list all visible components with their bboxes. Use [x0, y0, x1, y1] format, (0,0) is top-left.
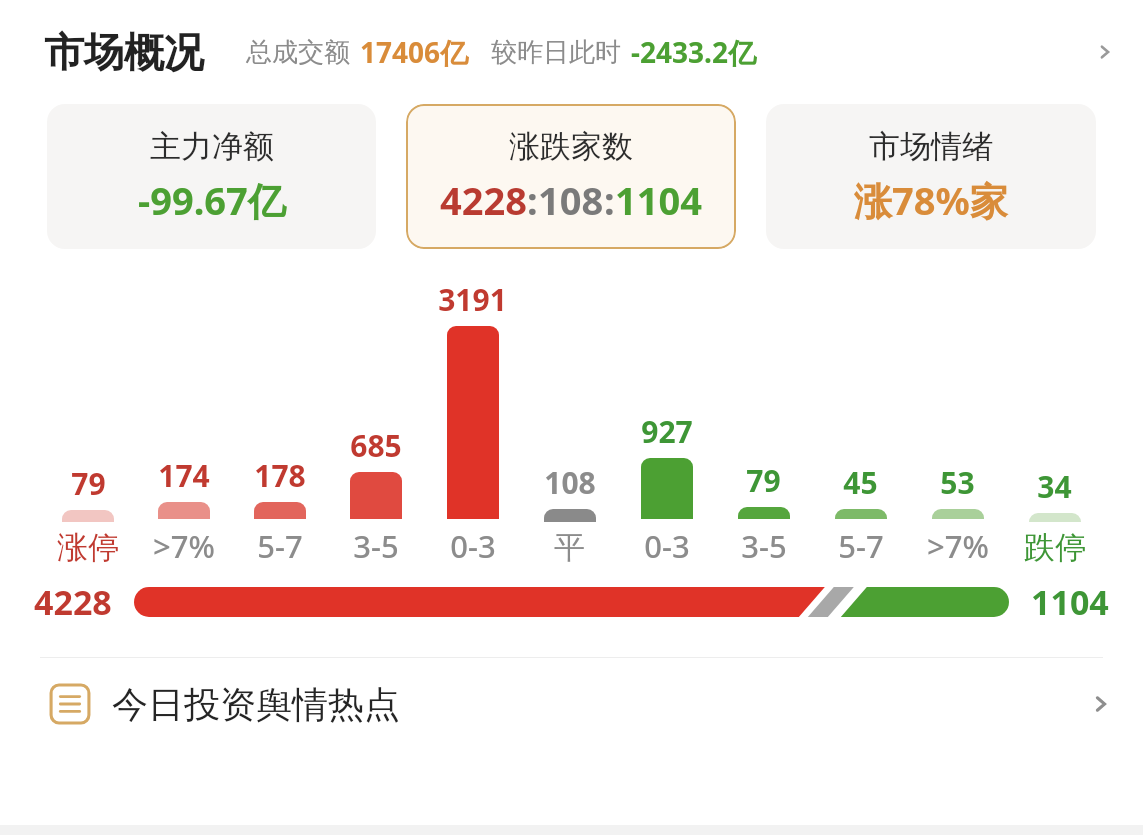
- staticText: 较昨日此时: [491, 36, 621, 69]
- staticText: 0-3: [450, 525, 496, 567]
- button[interactable]: 685: [328, 249, 424, 567]
- staticText: :: [604, 174, 615, 226]
- staticText: 平: [554, 528, 585, 567]
- staticText: 4228: [34, 579, 112, 625]
- staticText: 涨跌家数: [509, 127, 633, 166]
- staticText: 108: [544, 462, 596, 503]
- staticText: 5-7: [257, 525, 303, 567]
- staticText: >7%: [153, 525, 215, 567]
- staticText: 79: [71, 463, 106, 504]
- button[interactable]: 3191: [424, 249, 521, 567]
- button[interactable]: 今日投资舆情热点: [0, 658, 1143, 750]
- staticText: 108: [538, 174, 604, 226]
- staticText: 174: [158, 455, 210, 496]
- staticText: 涨78%家: [854, 174, 1008, 226]
- button[interactable]: 查看更多: [1079, 682, 1123, 726]
- staticText: 涨停: [57, 528, 119, 567]
- staticText: -99.67亿: [138, 174, 286, 226]
- staticText: 53: [940, 462, 975, 503]
- button[interactable]: 178: [232, 249, 328, 567]
- button[interactable]: 主力净额: [47, 104, 376, 249]
- button[interactable]: 927: [618, 249, 715, 567]
- staticText: 3-5: [741, 525, 787, 567]
- button[interactable]: 79: [715, 249, 812, 567]
- staticText: 跌停: [1024, 528, 1086, 567]
- staticText: 685: [350, 425, 402, 466]
- button[interactable]: 79: [40, 249, 136, 567]
- staticText: 1104: [615, 174, 702, 226]
- button[interactable]: 市场概况: [0, 0, 1143, 104]
- staticText: 3191: [438, 279, 507, 320]
- staticText: 79: [746, 460, 781, 501]
- staticText: 17406亿: [360, 33, 469, 71]
- button[interactable]: 市场情绪: [766, 104, 1096, 249]
- staticText: >7%: [927, 525, 989, 567]
- staticText: 市场概况: [44, 27, 204, 77]
- button[interactable]: 45: [812, 249, 909, 567]
- button[interactable]: 涨跌家数: [406, 104, 736, 249]
- staticText: 主力净额: [150, 127, 274, 166]
- button[interactable]: 53: [909, 249, 1006, 567]
- button[interactable]: 174: [136, 249, 232, 567]
- staticText: 5-7: [838, 525, 884, 567]
- staticText: 1104: [1031, 579, 1109, 625]
- staticText: 0-3: [644, 525, 690, 567]
- staticText: 3-5: [353, 525, 399, 567]
- staticText: :: [527, 174, 538, 226]
- button[interactable]: 34: [1006, 249, 1103, 567]
- staticText: 4228: [440, 174, 527, 226]
- staticText: 今日投资舆情热点: [112, 682, 400, 727]
- staticText: 178: [254, 455, 306, 496]
- staticText: 34: [1037, 466, 1072, 507]
- staticText: 市场情绪: [869, 127, 993, 166]
- staticText: -2433.2亿: [631, 33, 756, 71]
- button[interactable]: 108: [521, 249, 618, 567]
- staticText: 总成交额: [246, 36, 350, 69]
- staticText: 45: [843, 462, 878, 503]
- button[interactable]: 更多: [1085, 32, 1125, 72]
- staticText: 927: [641, 411, 693, 452]
